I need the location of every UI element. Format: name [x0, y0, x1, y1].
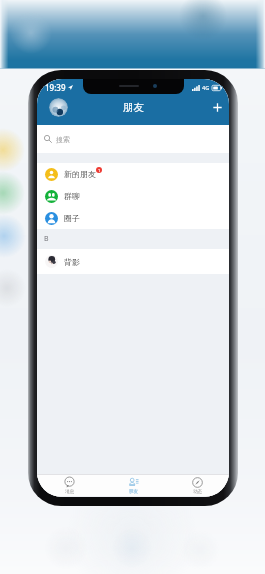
- button[interactable]: 朋友: [101, 475, 165, 496]
- staticText: 4G: [202, 84, 210, 91]
- staticText: 搜索: [56, 135, 70, 144]
- button[interactable]: 新的朋友: [37, 163, 229, 185]
- button[interactable]: 背影: [37, 249, 229, 274]
- staticText: 19:39: [45, 82, 66, 93]
- staticText: 圈子: [64, 213, 80, 223]
- button[interactable]: 群聊: [37, 185, 229, 207]
- staticText: 消息: [65, 489, 74, 495]
- staticText: 1: [98, 168, 101, 173]
- button[interactable]: Add: [209, 99, 225, 115]
- button[interactable]: 消息: [37, 475, 101, 496]
- button[interactable]: 搜索: [37, 125, 229, 153]
- staticText: B: [44, 234, 49, 244]
- staticText: 新的朋友: [64, 169, 96, 179]
- staticText: 朋友: [129, 489, 138, 495]
- button[interactable]: Profile: [49, 98, 68, 117]
- staticText: 朋友: [123, 101, 144, 114]
- staticText: 背影: [64, 257, 80, 267]
- staticText: 动态: [193, 489, 202, 495]
- button[interactable]: 圈子: [37, 207, 229, 229]
- staticText: 群聊: [64, 191, 80, 201]
- button[interactable]: 动态: [165, 475, 229, 496]
